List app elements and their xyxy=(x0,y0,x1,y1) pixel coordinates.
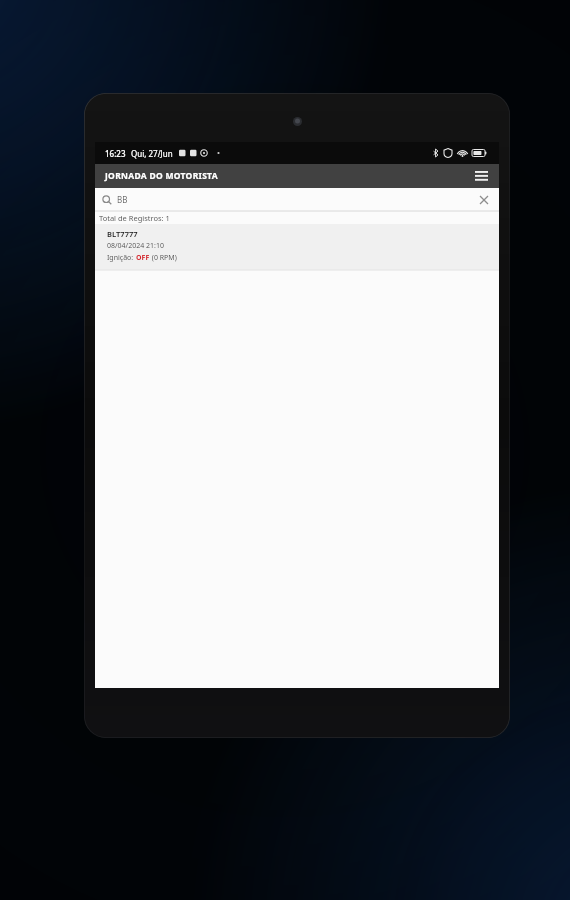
button[interactable]: Menu xyxy=(471,166,491,186)
staticText: (0 RPM) xyxy=(150,253,177,263)
button[interactable]: Clear search xyxy=(476,192,492,208)
staticText: 08/04/2024 21:10 xyxy=(107,241,164,251)
button[interactable]: BB xyxy=(95,188,499,211)
staticText: BB xyxy=(117,194,128,205)
staticText: Total de Registros: 1 xyxy=(99,213,170,223)
button[interactable]: BLT7777 xyxy=(95,224,499,270)
staticText: JORNADA DO MOTORISTA xyxy=(105,170,218,182)
staticText: Qui, 27/Jun xyxy=(131,148,173,159)
staticText: BLT7777 xyxy=(107,229,138,239)
staticText: 16:23 xyxy=(105,148,126,159)
staticText: Ignição: xyxy=(107,253,136,263)
staticText: OFF xyxy=(136,253,150,263)
